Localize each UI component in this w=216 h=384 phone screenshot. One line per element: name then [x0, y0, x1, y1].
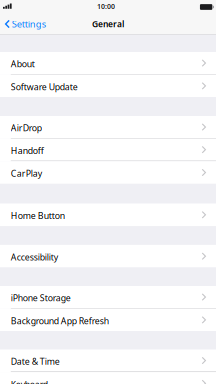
- button[interactable]: CarPlay: [0, 161, 216, 184]
- staticText: Handoff: [11, 144, 44, 156]
- button[interactable]: About: [0, 52, 216, 75]
- staticText: Background App Refresh: [11, 315, 109, 327]
- button[interactable]: AirDrop: [0, 116, 216, 139]
- staticText: About: [11, 58, 35, 70]
- button[interactable]: Date & Time: [0, 349, 216, 372]
- staticText: Keyboard: [11, 378, 48, 384]
- staticText: iPhone Storage: [11, 292, 71, 304]
- button[interactable]: iPhone Storage: [0, 286, 216, 309]
- staticText: Accessibility: [11, 251, 58, 263]
- staticText: Date & Time: [11, 355, 60, 367]
- staticText: Home Button: [11, 210, 65, 222]
- staticText: AirDrop: [11, 122, 42, 134]
- staticText: General: [92, 18, 124, 30]
- staticText: Settings: [12, 18, 46, 30]
- staticText: CarPlay: [11, 167, 42, 179]
- staticText: 10:00: [97, 1, 115, 11]
- button[interactable]: Home Button: [0, 203, 216, 226]
- button[interactable]: Handoff: [0, 139, 216, 161]
- button[interactable]: Accessibility: [0, 245, 216, 267]
- staticText: Software Update: [11, 81, 78, 93]
- button[interactable]: Settings: [0, 14, 51, 34]
- button[interactable]: Keyboard: [0, 372, 216, 384]
- button[interactable]: Software Update: [0, 75, 216, 97]
- button[interactable]: Background App Refresh: [0, 309, 216, 331]
